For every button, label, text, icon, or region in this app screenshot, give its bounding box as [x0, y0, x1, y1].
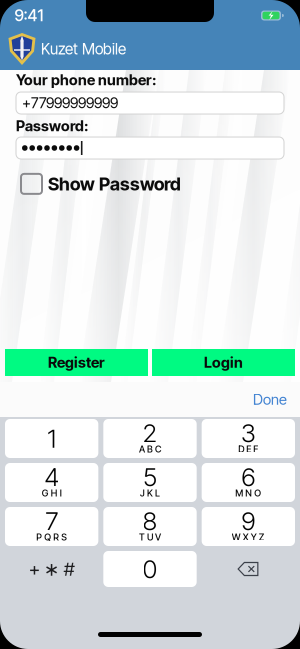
staticText: 3 [241, 418, 256, 448]
staticText: G H I [42, 487, 62, 499]
staticText: 4 [44, 462, 59, 492]
staticText: A B C [139, 443, 161, 455]
button[interactable]: Delete [202, 551, 295, 587]
staticText: 5 [143, 462, 157, 492]
staticText: Kuzet Mobile [41, 40, 126, 58]
staticText: +77999999999 [22, 94, 118, 112]
button[interactable]: Register [5, 349, 148, 376]
button[interactable]: 8 [103, 507, 197, 546]
staticText: Your phone number: [16, 71, 156, 89]
staticText: 9 [241, 506, 255, 536]
staticText: Register [48, 354, 105, 371]
staticText: J K L [140, 487, 160, 499]
button[interactable]: 5 [103, 463, 197, 502]
staticText: Password: [16, 117, 88, 135]
button[interactable]: 0 [103, 551, 197, 587]
button[interactable]: 7 [5, 507, 98, 546]
staticText: + ∗ # [29, 558, 75, 580]
button[interactable]: 3 [202, 419, 295, 458]
staticText: M N O [235, 487, 261, 499]
button[interactable]: Symbols [5, 551, 98, 587]
staticText: 0 [142, 554, 157, 584]
button[interactable]: 1 [5, 419, 98, 458]
staticText: 1 [47, 423, 56, 454]
button[interactable]: 2 [103, 419, 197, 458]
staticText: 2 [142, 418, 157, 448]
staticText: Login [204, 354, 243, 371]
button[interactable]: Show Password [16, 173, 181, 195]
staticText: Show Password [48, 173, 181, 195]
staticText: P Q R S [36, 531, 67, 543]
staticText: 8 [142, 506, 157, 536]
button[interactable]: Done [253, 380, 300, 419]
button[interactable]: 9 [202, 507, 295, 546]
button[interactable] [16, 137, 284, 159]
button[interactable]: 6 [202, 463, 295, 502]
button[interactable]: Login [152, 349, 295, 376]
staticText: W X Y Z [232, 531, 265, 543]
staticText: 6 [241, 462, 255, 492]
staticText: 9:41 [14, 6, 43, 25]
staticText: 7 [45, 506, 58, 536]
staticText: D E F [238, 443, 258, 455]
staticText: Done [253, 391, 287, 408]
button[interactable]: +77999999999 [16, 92, 284, 114]
button[interactable]: 4 [5, 463, 98, 502]
staticText: T U V [139, 531, 161, 543]
